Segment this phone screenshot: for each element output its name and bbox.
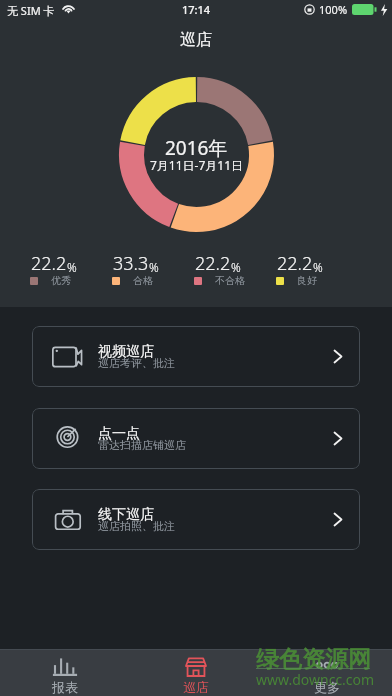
staticText: 7月11日-7月11日 bbox=[150, 157, 244, 173]
button[interactable]: 报表 bbox=[0, 650, 130, 696]
staticText: 无 SIM 卡 bbox=[7, 3, 55, 18]
staticText: 视频巡店 bbox=[98, 343, 154, 361]
staticText: 巡店考评、批注 bbox=[98, 356, 175, 370]
staticText: 报表 bbox=[52, 679, 78, 695]
staticText: 更多 bbox=[314, 679, 340, 695]
staticText: % bbox=[149, 259, 159, 275]
staticText: 绿色资源网 bbox=[256, 645, 371, 674]
staticText: 雷达扫描店铺巡店 bbox=[98, 438, 186, 452]
staticText: % bbox=[67, 259, 77, 275]
staticText: 22.2 bbox=[195, 251, 231, 276]
staticText: 线下巡店 bbox=[98, 506, 154, 524]
staticText: 巡店拍照、批注 bbox=[98, 519, 175, 533]
staticText: 100% bbox=[319, 2, 348, 17]
button[interactable]: 巡店 bbox=[130, 650, 261, 696]
staticText: 点一点 bbox=[98, 425, 140, 443]
button[interactable]: 线下巡店 bbox=[32, 489, 360, 550]
staticText: % bbox=[313, 259, 323, 275]
staticText: 22.2 bbox=[31, 251, 67, 276]
staticText: 良好 bbox=[297, 274, 317, 287]
staticText: % bbox=[231, 259, 241, 275]
staticText: 不合格 bbox=[215, 274, 245, 287]
staticText: 巡店 bbox=[183, 679, 209, 695]
staticText: 2016年 bbox=[165, 135, 228, 161]
staticText: 巡店 bbox=[180, 30, 212, 50]
staticText: 33.3 bbox=[113, 251, 149, 276]
staticText: 22.2 bbox=[277, 251, 313, 276]
staticText: www.downcc.com bbox=[256, 670, 375, 689]
staticText: 17:14 bbox=[182, 2, 211, 17]
staticText: 优秀 bbox=[51, 274, 71, 287]
button[interactable]: 点一点 bbox=[32, 408, 360, 469]
button[interactable]: 视频巡店 bbox=[32, 326, 360, 387]
staticText: 合格 bbox=[133, 274, 153, 287]
button[interactable]: 更多 bbox=[261, 650, 392, 696]
